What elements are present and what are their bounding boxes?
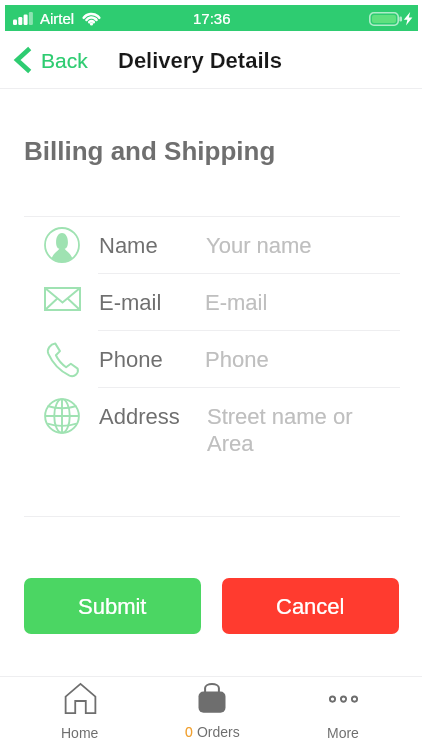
staticText: Phone [99,347,163,372]
other: More [328,683,359,714]
button[interactable]: Submit [24,578,201,634]
other: Phone [45,342,79,377]
staticText: Airtel [40,10,75,27]
button[interactable]: Address [44,398,80,434]
button[interactable]: More [283,680,403,742]
button[interactable]: Name [44,227,80,263]
staticText: E-mail [205,290,365,315]
staticText: Street name or Area [207,404,367,456]
staticText: 0 [185,724,193,740]
staticText: Orders [193,724,240,740]
staticText: Address [99,404,180,429]
staticText: Back [41,49,88,72]
button[interactable]: Phone [45,342,79,377]
staticText: Home [61,725,99,741]
other: Name [44,227,80,263]
button[interactable]: Home [20,680,140,742]
staticText: E-mail [99,290,162,315]
other: Back [15,46,31,74]
staticText: Submit [78,594,147,619]
button[interactable]: Back [13,44,90,76]
other: Address [44,398,80,434]
other: Home [65,683,96,714]
staticText: 17:36 [193,10,231,27]
staticText: Name [99,233,158,258]
staticText: Billing and Shipping [24,136,276,165]
button[interactable]: Cancel [222,578,399,634]
staticText: Your name [206,233,366,258]
button[interactable]: E-mail [44,287,81,311]
other: E-mail [44,287,81,311]
staticText: More [327,725,359,741]
staticText: Delivery Details [118,48,282,73]
other: Orders [197,682,227,714]
button[interactable]: Orders [152,680,272,742]
staticText: Cancel [276,594,345,619]
staticText: Phone [205,347,365,372]
